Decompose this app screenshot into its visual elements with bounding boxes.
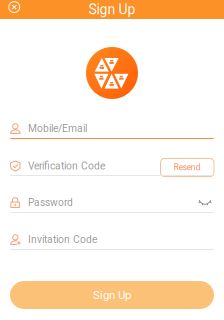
button[interactable]: Sign Up (10, 281, 214, 309)
staticText: Sign Up (88, 1, 135, 18)
staticText: Mobile/Email (28, 122, 87, 134)
staticText: Resend (174, 163, 201, 172)
staticText: Verification Code (28, 160, 105, 172)
staticText: Password (28, 196, 73, 208)
staticText: Sign Up (93, 288, 131, 302)
staticText: Invitation Code (28, 233, 97, 245)
button[interactable]: Close (0, 0, 28, 19)
button[interactable]: Resend (160, 157, 214, 175)
button[interactable]: Show password (196, 195, 214, 209)
